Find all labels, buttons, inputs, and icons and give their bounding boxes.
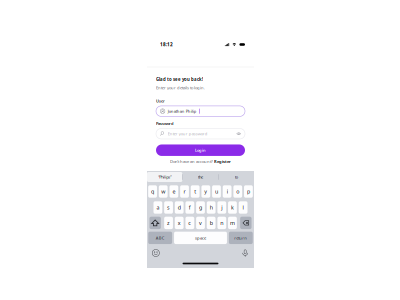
staticText: y: [204, 188, 207, 195]
staticText: return: [234, 235, 247, 241]
staticText: i: [227, 188, 228, 195]
staticText: Login: [195, 147, 206, 153]
staticText: k: [231, 204, 234, 211]
staticText: space: [195, 235, 206, 241]
button[interactable]: Shift: [149, 217, 161, 229]
button[interactable]: Login: [156, 144, 245, 156]
button[interactable]: Don't have an account?: [156, 159, 245, 164]
staticText: a: [156, 204, 159, 211]
staticText: x: [178, 219, 181, 227]
staticText: Enter your details to login.: [156, 85, 205, 90]
staticText: g: [199, 204, 202, 211]
button[interactable]: x: [175, 217, 184, 229]
button[interactable]: “Philips”: [147, 172, 182, 182]
button[interactable]: s: [164, 201, 173, 214]
button[interactable]: g: [196, 201, 205, 214]
button[interactable]: i: [223, 185, 231, 198]
staticText: p: [247, 188, 250, 195]
button[interactable]: Dictate: [240, 248, 250, 258]
staticText: Register: [214, 159, 231, 164]
button[interactable]: m: [228, 217, 237, 229]
button[interactable]: Emoji keyboard: [150, 248, 161, 258]
staticText: h: [210, 204, 213, 211]
staticText: b: [210, 219, 213, 227]
staticText: c: [188, 219, 191, 227]
staticText: f: [189, 204, 191, 211]
button[interactable]: o: [233, 185, 242, 198]
staticText: j: [221, 204, 222, 211]
staticText: m: [230, 219, 235, 227]
staticText: Glad to see you back!: [156, 76, 203, 82]
button[interactable]: d: [175, 201, 184, 214]
button[interactable]: b: [207, 217, 215, 229]
staticText: o: [236, 188, 239, 195]
button[interactable]: k: [228, 201, 237, 214]
staticText: to: [235, 174, 238, 180]
staticText: s: [167, 204, 170, 211]
staticText: “Philips”: [158, 174, 171, 180]
staticText: t: [194, 188, 196, 195]
button[interactable]: w: [159, 185, 168, 198]
staticText: z: [167, 219, 170, 227]
staticText: l: [243, 204, 244, 211]
button[interactable]: the: [183, 172, 218, 182]
button[interactable]: t: [191, 185, 200, 198]
staticText: d: [178, 204, 181, 211]
button[interactable]: h: [207, 201, 216, 214]
staticText: User: [156, 98, 165, 104]
staticText: n: [220, 219, 223, 227]
button[interactable]: z: [164, 217, 173, 229]
button[interactable]: n: [217, 217, 226, 229]
button[interactable]: a: [153, 201, 162, 214]
button[interactable]: q: [148, 185, 157, 198]
button[interactable]: Delete: [240, 217, 251, 229]
button[interactable]: p: [244, 185, 253, 198]
staticText: Enter your password: [168, 131, 208, 136]
staticText: Jonathan Philip: [168, 108, 197, 114]
button[interactable]: Enter your password: [156, 128, 245, 139]
staticText: q: [151, 188, 154, 195]
staticText: 18:12: [160, 41, 173, 48]
button[interactable]: to: [219, 172, 254, 182]
staticText: w: [161, 188, 165, 195]
button[interactable]: f: [185, 201, 194, 214]
button[interactable]: r: [180, 185, 189, 198]
staticText: e: [172, 188, 175, 195]
staticText: Password: [156, 121, 173, 126]
button[interactable]: ABC: [148, 232, 172, 244]
button[interactable]: c: [185, 217, 194, 229]
button[interactable]: v: [196, 217, 205, 229]
staticText: Don't have an account?: [170, 159, 213, 164]
staticText: u: [215, 188, 218, 195]
staticText: ABC: [156, 235, 165, 241]
button[interactable]: y: [201, 185, 210, 198]
button[interactable]: u: [212, 185, 221, 198]
staticText: the: [198, 174, 203, 180]
button[interactable]: return: [229, 232, 253, 244]
button[interactable]: space: [174, 232, 227, 244]
button[interactable]: Jonathan Philip: [156, 106, 245, 116]
staticText: v: [199, 219, 202, 227]
staticText: r: [183, 188, 185, 195]
button[interactable]: l: [239, 201, 247, 214]
button[interactable]: j: [217, 201, 226, 214]
button[interactable]: e: [169, 185, 178, 198]
